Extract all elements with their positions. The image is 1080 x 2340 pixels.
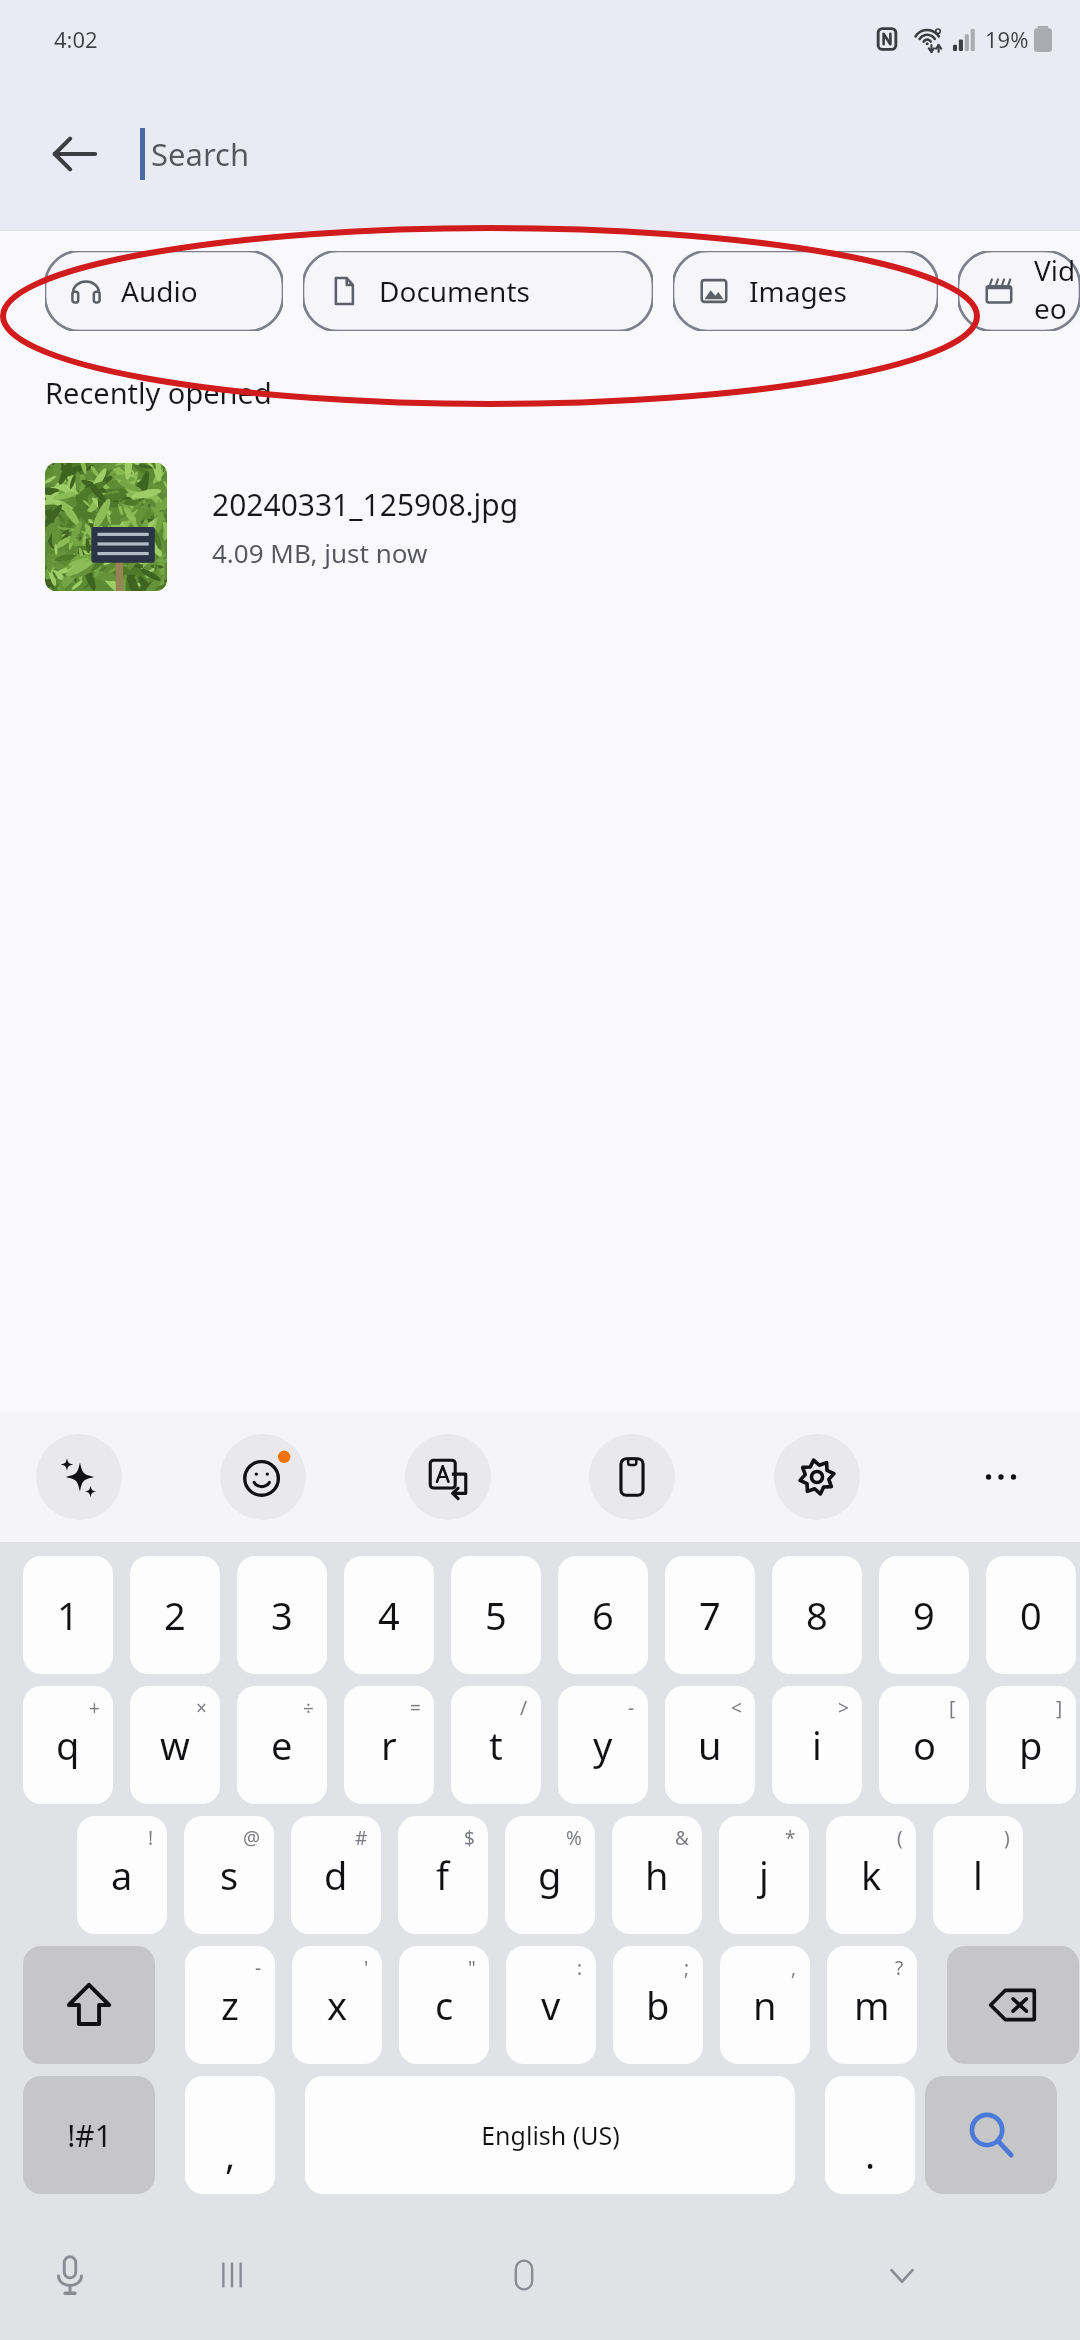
button[interactable]: 9 — [879, 1556, 969, 1674]
staticText: 1 — [57, 1589, 79, 1641]
button[interactable]: 1 — [23, 1556, 113, 1674]
button[interactable]: q — [23, 1686, 113, 1804]
button[interactable]: Home — [324, 2210, 724, 2340]
button[interactable]: 3 — [237, 1556, 327, 1674]
button[interactable]: Images — [673, 251, 938, 331]
button[interactable]: Voice input — [0, 2210, 140, 2340]
button[interactable]: 0 — [986, 1556, 1076, 1674]
staticText: !#1 — [67, 2115, 112, 2156]
button[interactable]: i — [772, 1686, 862, 1804]
staticText: 7 — [699, 1589, 721, 1641]
staticText: o — [913, 1719, 936, 1771]
staticText: g — [538, 1849, 562, 1901]
staticText: . — [865, 2128, 876, 2180]
staticText: ) — [1004, 1825, 1010, 1851]
staticText: # — [355, 1825, 368, 1851]
staticText: , — [791, 1955, 797, 1981]
button[interactable]: !#1 — [23, 2076, 155, 2194]
staticText: v — [541, 1979, 561, 2031]
button[interactable]: 20240331_125908.jpg — [0, 452, 1080, 602]
button[interactable]: English (US) — [305, 2076, 795, 2194]
button[interactable]: AI suggestions — [36, 1434, 122, 1520]
button[interactable]: e — [237, 1686, 327, 1804]
staticText: ; — [684, 1955, 690, 1981]
button[interactable]: 6 — [558, 1556, 648, 1674]
staticText: Audio — [121, 272, 198, 310]
button[interactable]: 7 — [665, 1556, 755, 1674]
button[interactable]: j — [719, 1816, 809, 1934]
button[interactable]: l — [933, 1816, 1023, 1934]
staticText: t — [489, 1719, 503, 1771]
staticText: i — [812, 1719, 822, 1771]
button[interactable]: b — [613, 1946, 703, 2064]
button[interactable]: 2 — [130, 1556, 220, 1674]
staticText: : — [577, 1955, 583, 1981]
button[interactable]: o — [879, 1686, 969, 1804]
button[interactable]: Emoji — [220, 1434, 306, 1520]
staticText: , — [225, 2128, 236, 2180]
button[interactable]: f — [398, 1816, 488, 1934]
button[interactable]: h — [612, 1816, 702, 1934]
staticText: q — [56, 1719, 80, 1771]
button[interactable]: Settings — [774, 1434, 860, 1520]
staticText: r — [381, 1719, 397, 1771]
button[interactable]: p — [986, 1686, 1076, 1804]
staticText: 2 — [164, 1589, 186, 1641]
staticText: k — [861, 1849, 882, 1901]
button[interactable]: Audio — [45, 251, 283, 331]
staticText: < — [731, 1695, 742, 1721]
staticText: Documents — [379, 272, 530, 310]
button[interactable]: 8 — [772, 1556, 862, 1674]
staticText: Videos — [1034, 251, 1080, 331]
staticText: ? — [895, 1955, 904, 1981]
button[interactable]: k — [826, 1816, 916, 1934]
staticText: p — [1019, 1719, 1043, 1771]
button[interactable]: Clipboard — [589, 1434, 675, 1520]
button[interactable]: n — [720, 1946, 810, 2064]
button[interactable]: , — [185, 2076, 275, 2194]
staticText: ! — [148, 1825, 154, 1851]
button[interactable]: a — [77, 1816, 167, 1934]
button[interactable]: r — [344, 1686, 434, 1804]
staticText: 0 — [1020, 1589, 1042, 1641]
button[interactable]: More options — [958, 1434, 1044, 1520]
staticText: 4:02 — [54, 24, 98, 54]
button[interactable]: u — [665, 1686, 755, 1804]
button[interactable]: Videos — [958, 251, 1080, 331]
staticText: d — [324, 1849, 348, 1901]
staticText: u — [698, 1719, 722, 1771]
button[interactable]: Hide keyboard — [724, 2210, 1080, 2340]
button[interactable]: Documents — [303, 251, 653, 331]
staticText: Recently opened — [45, 373, 272, 412]
staticText: y — [593, 1719, 613, 1771]
button[interactable]: c — [399, 1946, 489, 2064]
button[interactable]: Translate — [405, 1434, 491, 1520]
staticText: 4 — [378, 1589, 400, 1641]
staticText: l — [973, 1849, 983, 1901]
button[interactable]: t — [451, 1686, 541, 1804]
staticText: Search — [151, 133, 250, 175]
staticText: n — [753, 1979, 777, 2031]
button[interactable]: Search — [925, 2076, 1057, 2194]
staticText: f — [436, 1849, 450, 1901]
button[interactable]: Shift — [23, 1946, 155, 2064]
button[interactable]: Back — [26, 106, 122, 202]
button[interactable]: d — [291, 1816, 381, 1934]
button[interactable]: y — [558, 1686, 648, 1804]
button[interactable]: v — [506, 1946, 596, 2064]
staticText: @ — [243, 1825, 261, 1851]
button[interactable]: x — [292, 1946, 382, 2064]
button[interactable]: z — [185, 1946, 275, 2064]
button[interactable]: Recents — [140, 2210, 324, 2340]
button[interactable]: m — [827, 1946, 917, 2064]
staticText: w — [160, 1719, 190, 1771]
button[interactable]: g — [505, 1816, 595, 1934]
button[interactable]: Backspace — [947, 1946, 1079, 2064]
staticText: [ — [949, 1695, 956, 1721]
button[interactable]: s — [184, 1816, 274, 1934]
button[interactable]: w — [130, 1686, 220, 1804]
button[interactable]: 4 — [344, 1556, 434, 1674]
button[interactable]: . — [825, 2076, 915, 2194]
button[interactable]: 5 — [451, 1556, 541, 1674]
staticText: 8 — [806, 1589, 828, 1641]
